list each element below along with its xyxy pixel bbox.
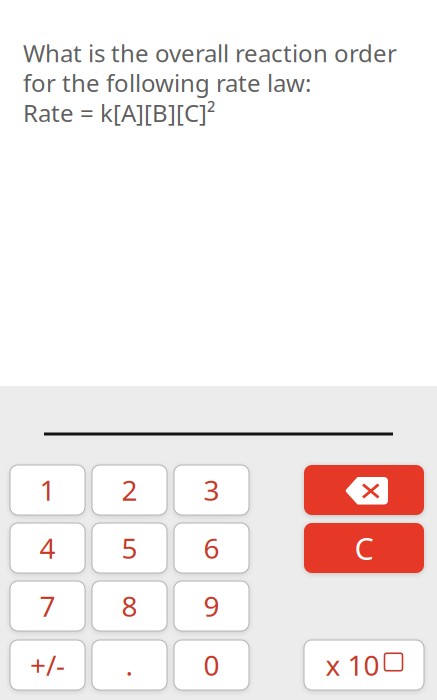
button[interactable]: Delete	[304, 465, 424, 515]
staticText: 1	[39, 471, 55, 509]
button[interactable]: 4	[10, 523, 85, 573]
staticText: 5	[121, 529, 137, 567]
staticText: 7	[39, 587, 55, 625]
button[interactable]: 9	[174, 581, 249, 631]
staticText: What is the overall reaction order	[23, 37, 397, 69]
button[interactable]: 2	[92, 465, 167, 515]
staticText: C	[354, 528, 373, 568]
button[interactable]: 7	[10, 581, 85, 631]
staticText: .	[125, 646, 133, 684]
staticText: Rate = k[A][B][C]²	[23, 97, 215, 129]
staticText: 2	[121, 471, 137, 509]
staticText: 9	[203, 587, 219, 625]
button[interactable]: 3	[174, 465, 249, 515]
staticText: 4	[39, 529, 55, 567]
button[interactable]: 5	[92, 523, 167, 573]
button[interactable]: 0	[174, 640, 249, 690]
button[interactable]: .	[92, 640, 167, 690]
staticText: 0	[203, 646, 219, 684]
button[interactable]: C	[304, 523, 424, 573]
staticText: 8	[121, 587, 137, 625]
staticText: for the following rate law:	[23, 67, 311, 99]
staticText: x 10	[325, 646, 379, 684]
staticText: +/-	[30, 646, 65, 684]
button[interactable]: 6	[174, 523, 249, 573]
button[interactable]: +/-	[10, 640, 85, 690]
button[interactable]: 8	[92, 581, 167, 631]
staticText: 3	[203, 471, 219, 509]
staticText: 6	[203, 529, 219, 567]
button[interactable]: 1	[10, 465, 85, 515]
button[interactable]: x 10	[304, 640, 424, 690]
